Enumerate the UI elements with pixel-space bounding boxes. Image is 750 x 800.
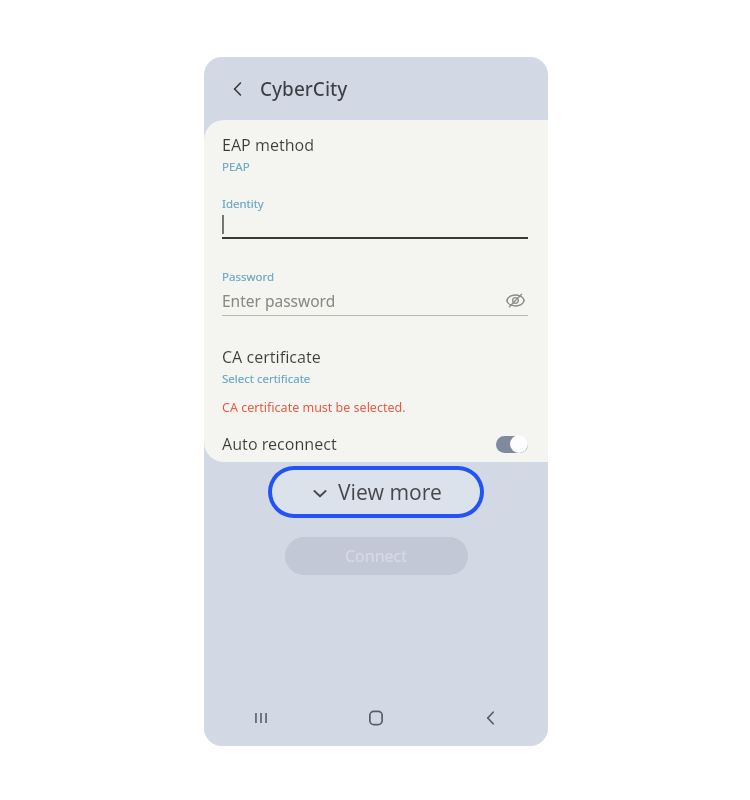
staticText: Auto reconnect (222, 433, 337, 455)
button[interactable]: Recent apps (204, 690, 318, 746)
staticText: Connect (345, 545, 408, 567)
button[interactable]: Home (318, 690, 433, 746)
button[interactable]: Connect (285, 537, 468, 575)
button[interactable]: View more (268, 466, 484, 518)
staticText: PEAP (222, 159, 250, 175)
button[interactable]: CA certificate (222, 346, 528, 387)
button[interactable]: EAP method (222, 134, 528, 175)
staticText: CyberCity (260, 76, 348, 102)
button[interactable]: Back (433, 690, 548, 746)
button[interactable]: Auto reconnect toggle (496, 435, 528, 453)
staticText: Select certificate (222, 371, 311, 387)
staticText: Enter password (222, 290, 336, 311)
staticText: Password (222, 269, 275, 285)
button[interactable]: Back (222, 73, 254, 105)
button[interactable]: Auto reconnect (222, 430, 528, 458)
staticText: CA certificate (222, 346, 321, 368)
staticText: View more (338, 478, 442, 507)
staticText: EAP method (222, 134, 315, 156)
button[interactable]: Enter password (222, 290, 502, 311)
button[interactable]: Show password (502, 287, 528, 313)
staticText: Identity (222, 196, 264, 212)
staticText: CA certificate must be selected. (222, 399, 406, 416)
button[interactable]: Identity (222, 196, 528, 239)
